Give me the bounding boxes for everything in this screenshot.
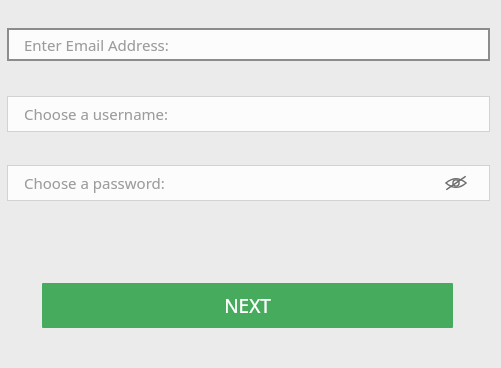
- button[interactable]: Enter Email Address:: [7, 28, 490, 61]
- staticText: Choose a username:: [24, 104, 169, 124]
- button[interactable]: Choose a password:: [7, 165, 490, 201]
- staticText: NEXT: [224, 293, 271, 319]
- staticText: Choose a password:: [24, 173, 165, 193]
- button[interactable]: Choose a username:: [7, 96, 490, 132]
- button[interactable]: Show password: [444, 171, 468, 195]
- button[interactable]: NEXT: [42, 283, 453, 328]
- staticText: Enter Email Address:: [24, 35, 169, 55]
